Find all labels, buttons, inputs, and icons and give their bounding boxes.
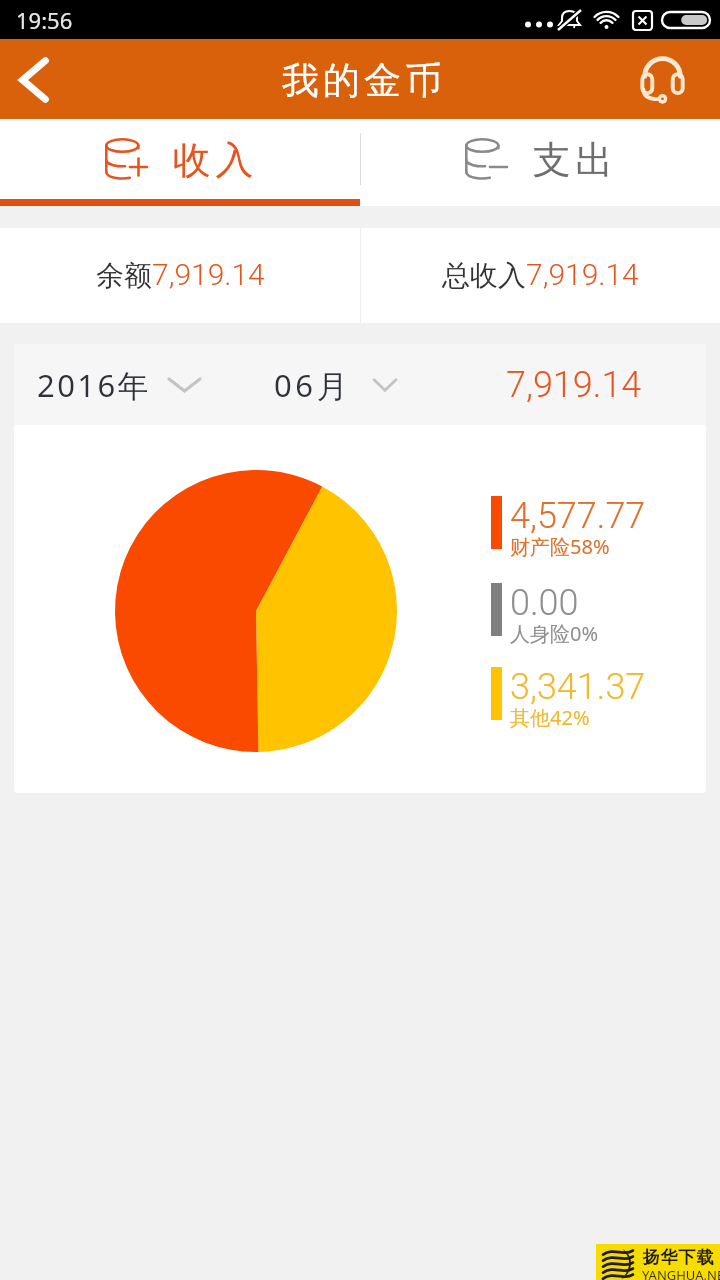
staticText: 06月 — [274, 364, 352, 406]
staticText: 收入 — [170, 136, 256, 184]
button[interactable]: Customer service — [612, 39, 720, 119]
staticText: 人身险0% — [510, 620, 599, 647]
button[interactable]: 收入 — [0, 119, 360, 199]
button[interactable]: 支出 — [360, 119, 720, 199]
staticText: 7,919.14 — [506, 364, 642, 406]
staticText: 2016年 — [37, 364, 151, 406]
button[interactable]: 2016年 — [37, 364, 200, 406]
button[interactable]: 总收入 — [360, 228, 720, 323]
staticText: 19:56 — [16, 5, 73, 35]
staticText: YANGHUA.NET — [642, 1266, 720, 1280]
staticText: 3,341.37 — [510, 666, 646, 708]
staticText: 我的金币 — [280, 57, 444, 104]
staticText: 7,919.14 — [526, 257, 639, 292]
button[interactable]: 余额 — [0, 228, 360, 323]
staticText: 7,919.14 — [152, 257, 265, 292]
staticText: 0.00 — [510, 582, 579, 624]
staticText: 财产险58% — [510, 533, 610, 560]
staticText: 余额 — [96, 258, 152, 293]
button[interactable]: Back — [0, 39, 64, 119]
button[interactable]: 06月 — [274, 364, 396, 406]
staticText: 其他42% — [510, 704, 590, 731]
staticText: 4,577.77 — [510, 495, 646, 537]
staticText: 支出 — [530, 136, 616, 184]
staticText: 总收入 — [442, 258, 526, 293]
staticText: 扬华下载 — [642, 1247, 714, 1268]
